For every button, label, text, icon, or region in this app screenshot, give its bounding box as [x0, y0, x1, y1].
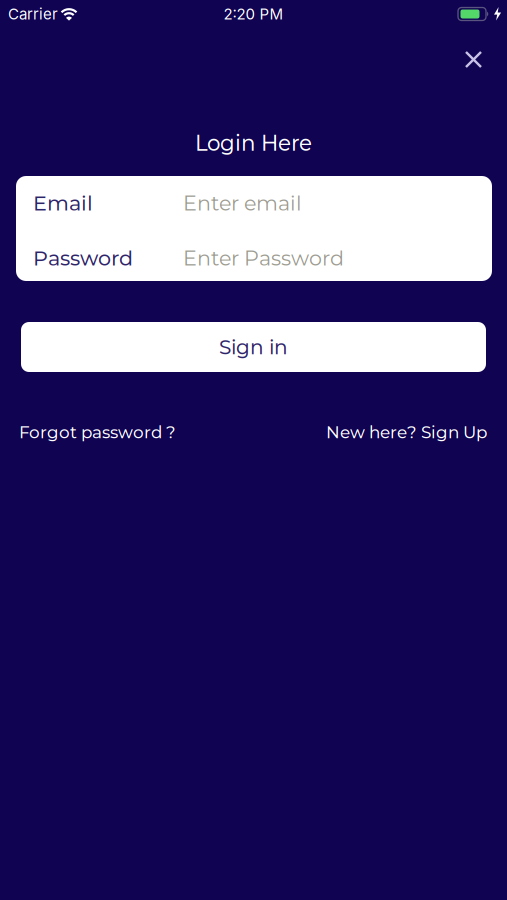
button[interactable]: New here? Sign Up: [326, 422, 487, 442]
staticText: 2:20 PM: [223, 5, 283, 23]
staticText: New here? Sign Up: [326, 422, 487, 442]
staticText: Email: [33, 190, 93, 216]
staticText: Sign in: [219, 335, 288, 359]
staticText: Password: [33, 245, 133, 271]
button[interactable]: Sign in: [21, 322, 486, 372]
button[interactable]: Forgot password ?: [19, 422, 176, 442]
staticText: Carrier: [8, 5, 58, 23]
staticText: Enter Password: [183, 245, 344, 271]
staticText: Login Here: [195, 130, 312, 156]
button[interactable]: Close: [458, 44, 489, 75]
staticText: Forgot password ?: [19, 422, 176, 442]
secureTextField[interactable]: Enter Password: [183, 245, 492, 271]
textField[interactable]: Enter email: [183, 190, 492, 216]
staticText: Enter email: [183, 190, 302, 216]
